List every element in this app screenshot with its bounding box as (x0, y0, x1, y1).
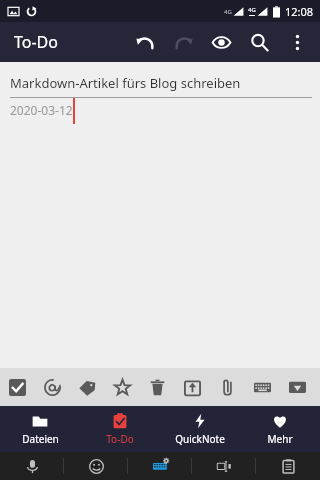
button[interactable]: Redo (164, 23, 202, 61)
staticText: Mehr (267, 432, 293, 446)
button[interactable]: Emoji (64, 452, 128, 480)
button[interactable]: Clipboard (256, 452, 320, 480)
staticText: To-Do (106, 432, 134, 446)
button[interactable]: Export (175, 368, 210, 406)
button[interactable]: Mehr (240, 406, 320, 452)
button[interactable]: Voice input (0, 452, 64, 480)
button[interactable]: Mention (35, 368, 70, 406)
button[interactable]: QuickNote (160, 406, 240, 452)
button[interactable]: Hide keyboard (280, 368, 315, 406)
button[interactable]: Search (240, 23, 278, 61)
button[interactable]: Text editing (192, 452, 256, 480)
button[interactable]: Keyboard (128, 452, 192, 480)
staticText: QuickNote (175, 432, 225, 446)
staticText: Dateien (22, 432, 59, 446)
button[interactable]: More options (278, 23, 316, 61)
staticText: 12:08 (285, 4, 314, 19)
button[interactable]: Delete (140, 368, 175, 406)
button[interactable]: Undo (126, 23, 164, 61)
button[interactable]: Keyboard (245, 368, 280, 406)
button[interactable]: Attach (210, 368, 245, 406)
button[interactable]: To-Do (80, 406, 160, 452)
button[interactable]: Preview (202, 23, 240, 61)
staticText: Markdown-Artikel fürs Blog schreiben (10, 74, 241, 92)
staticText: 4G (248, 6, 256, 14)
button[interactable]: Checkbox (0, 368, 35, 406)
button[interactable]: Tag (70, 368, 105, 406)
staticText: 4G (224, 8, 232, 16)
button[interactable]: Dateien (0, 406, 80, 452)
staticText: To-Do (14, 31, 58, 53)
staticText: 2020-03-12 (10, 102, 73, 118)
button[interactable]: Favorite (105, 368, 140, 406)
